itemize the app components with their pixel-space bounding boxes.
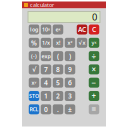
staticText: eˣ <box>55 26 60 33</box>
staticText: (-) <box>31 53 37 60</box>
staticText: 1/x <box>42 39 50 46</box>
button[interactable]: (-) <box>29 51 39 61</box>
button[interactable]: = <box>89 104 99 114</box>
staticText: calculator <box>30 1 54 9</box>
button[interactable]: % <box>29 38 39 48</box>
button[interactable]: 7 <box>41 64 51 74</box>
staticText: × <box>91 64 96 75</box>
button[interactable]: + <box>89 91 99 101</box>
staticText: exp <box>41 53 50 60</box>
staticText: ÷ <box>91 51 96 61</box>
button[interactable]: 2 <box>53 91 63 101</box>
staticText: ( <box>57 52 59 61</box>
button[interactable]: ( <box>53 51 63 61</box>
staticText: − <box>91 77 96 88</box>
button[interactable]: 10ˣ <box>41 24 51 34</box>
staticText: = <box>91 104 96 115</box>
staticText: 1 <box>44 92 48 100</box>
staticText: . <box>57 105 59 114</box>
button[interactable]: log <box>29 24 39 34</box>
staticText: 3 <box>68 92 72 100</box>
button[interactable]: × <box>89 64 99 74</box>
staticText: x² <box>67 39 72 46</box>
button[interactable]: − <box>89 78 99 88</box>
button[interactable]: x² <box>65 38 75 48</box>
staticText: C <box>92 25 96 34</box>
button[interactable]: STO <box>29 91 39 101</box>
button[interactable]: . <box>53 104 63 114</box>
staticText: RCL <box>29 106 38 113</box>
button[interactable]: 4 <box>41 78 51 88</box>
button[interactable]: √x <box>77 38 87 48</box>
staticText: 10ˣ <box>42 26 50 33</box>
staticText: 7 <box>44 65 48 74</box>
button[interactable]: 1/x <box>41 38 51 48</box>
button[interactable]: eˣ <box>53 24 63 34</box>
button[interactable]: 3 <box>65 91 75 101</box>
staticText: 2 <box>56 92 60 100</box>
button[interactable]: 1 <box>41 91 51 101</box>
button[interactable]: 6 <box>65 78 75 88</box>
button[interactable]: 9 <box>65 64 75 74</box>
button[interactable]: 0 <box>41 104 51 114</box>
staticText: x! <box>56 39 60 46</box>
button[interactable]: x! <box>53 38 63 48</box>
button[interactable]: C <box>89 24 99 34</box>
staticText: + <box>91 91 96 101</box>
button[interactable]: AC <box>77 24 87 34</box>
button[interactable]: 8 <box>53 64 63 74</box>
staticText: ) <box>69 52 71 61</box>
staticText: 4 <box>44 78 48 87</box>
button[interactable]: ± <box>65 104 75 114</box>
button[interactable]: exp <box>41 51 51 61</box>
staticText: √x <box>78 39 85 46</box>
button[interactable]: ÷ <box>89 51 99 61</box>
staticText: yˣ <box>91 39 96 46</box>
staticText: STO <box>29 92 39 100</box>
button[interactable]: √ <box>29 64 39 74</box>
button[interactable]: 5 <box>53 78 63 88</box>
staticText: log <box>30 26 38 33</box>
staticText: % <box>31 38 37 47</box>
staticText: AC <box>78 25 86 34</box>
staticText: xʸ <box>31 79 36 86</box>
staticText: ± <box>68 105 72 114</box>
button[interactable]: ) <box>65 51 75 61</box>
button[interactable]: xʸ <box>29 78 39 88</box>
staticText: 8 <box>56 65 60 74</box>
staticText: 0 <box>44 105 48 114</box>
staticText: 6 <box>68 78 72 87</box>
staticText: 5 <box>56 78 60 87</box>
staticText: √ <box>32 66 36 73</box>
staticText: 9 <box>68 65 72 74</box>
button[interactable]: yˣ <box>89 38 99 48</box>
staticText: 0 <box>92 11 97 23</box>
button[interactable]: RCL <box>29 104 39 114</box>
